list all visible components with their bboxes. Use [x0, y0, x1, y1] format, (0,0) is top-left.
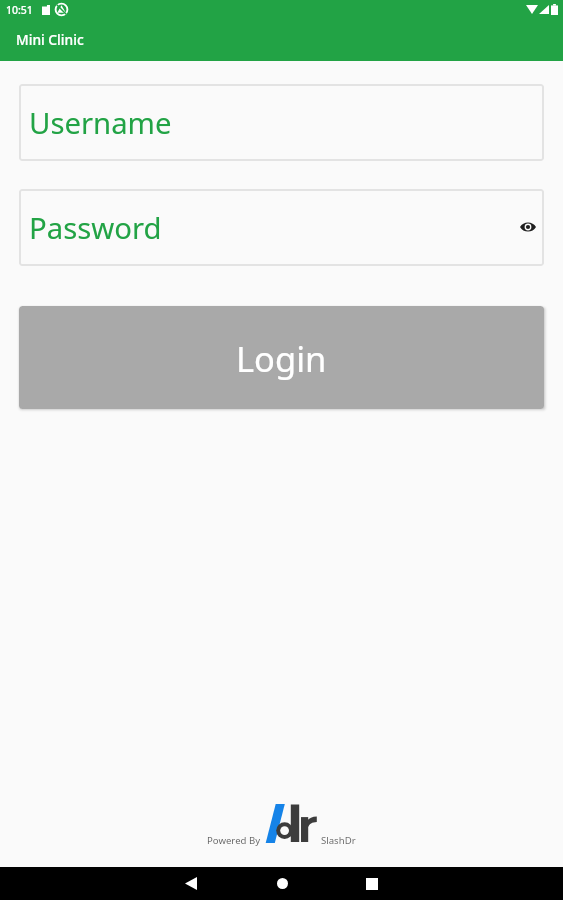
button[interactable]: Password — [19, 189, 544, 266]
button[interactable]: Login — [19, 306, 544, 409]
staticText: Password — [29, 208, 162, 248]
staticText: SlashDr — [321, 834, 356, 847]
staticText: Mini Clinic — [16, 30, 84, 49]
button[interactable]: Username — [19, 84, 544, 161]
staticText: 10:51 — [6, 3, 33, 17]
staticText: Powered By — [207, 834, 261, 847]
button[interactable]: Recent apps — [342, 867, 402, 900]
staticText: Login — [236, 335, 327, 382]
button[interactable]: Back — [161, 867, 221, 900]
staticText: Username — [29, 103, 172, 143]
button[interactable]: Home — [252, 867, 312, 900]
button[interactable]: Show password — [514, 214, 542, 242]
